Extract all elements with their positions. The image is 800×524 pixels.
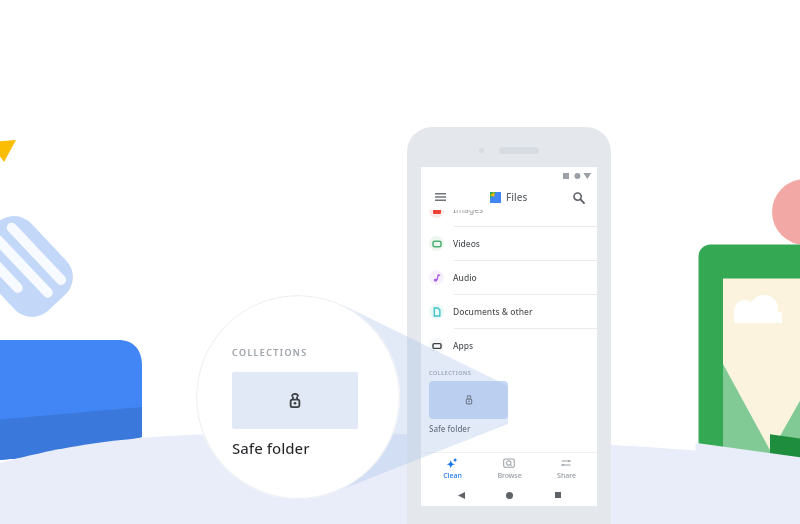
staticText: COLLECTIONS bbox=[232, 346, 308, 358]
staticText: Files bbox=[506, 190, 528, 204]
button[interactable]: Back bbox=[452, 486, 470, 504]
staticText: Audio bbox=[453, 272, 477, 284]
staticText: Apps bbox=[453, 340, 474, 352]
staticText: Videos bbox=[453, 238, 480, 250]
button[interactable]: Videos bbox=[429, 227, 597, 260]
staticText: Documents & other bbox=[453, 306, 533, 318]
button[interactable]: Apps bbox=[429, 329, 597, 362]
staticText: Share bbox=[557, 471, 576, 481]
button[interactable]: Documents & other bbox=[429, 295, 597, 328]
staticText: COLLECTIONS bbox=[429, 369, 472, 376]
button[interactable]: Open navigation menu bbox=[431, 188, 449, 206]
button[interactable]: Browse bbox=[483, 454, 535, 484]
button[interactable]: Audio bbox=[429, 261, 597, 294]
staticText: Safe folder bbox=[429, 423, 471, 434]
button[interactable]: Clean bbox=[426, 454, 478, 484]
staticText: Clean bbox=[443, 471, 462, 481]
staticText: Images bbox=[453, 210, 484, 216]
button[interactable]: Home bbox=[500, 486, 518, 504]
staticText: Safe folder bbox=[232, 438, 310, 458]
button[interactable]: Search bbox=[569, 188, 587, 206]
button[interactable] bbox=[429, 381, 508, 419]
button[interactable]: Share bbox=[540, 454, 592, 484]
button[interactable]: Recent apps bbox=[549, 486, 567, 504]
button[interactable] bbox=[232, 372, 358, 429]
staticText: Browse bbox=[497, 471, 522, 481]
